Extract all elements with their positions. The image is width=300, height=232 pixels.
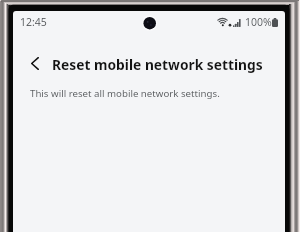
staticText: Reset mobile network settings xyxy=(52,55,263,74)
button[interactable]: Navigate up xyxy=(18,46,51,80)
other: Battery full xyxy=(272,18,278,27)
staticText: This will reset all mobile network setti… xyxy=(30,87,220,100)
other: Wi-Fi signal xyxy=(216,15,230,27)
staticText: 100% xyxy=(245,15,272,29)
staticText: 12:45 xyxy=(20,15,47,29)
